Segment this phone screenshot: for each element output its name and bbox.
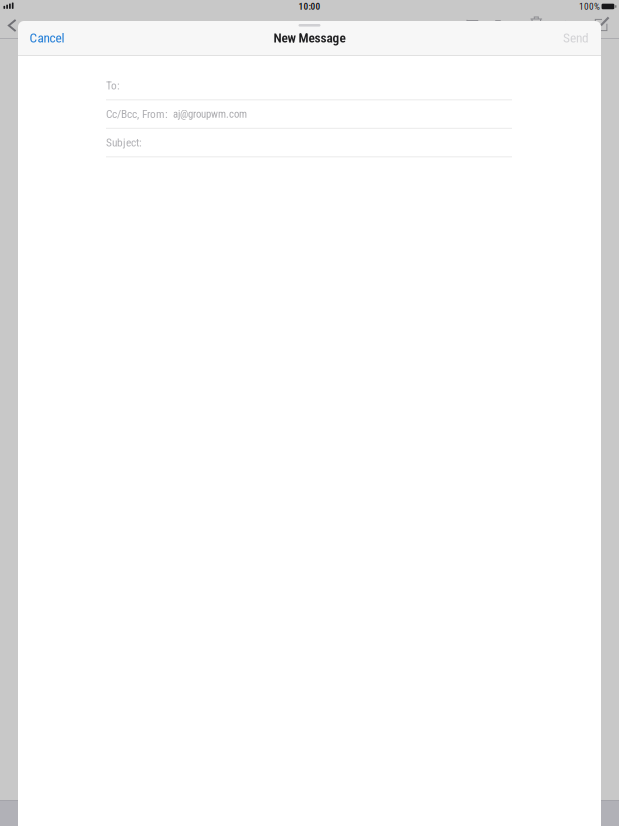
staticText: Cc/Bcc, From: — [106, 107, 168, 121]
staticText: Subject: — [106, 136, 142, 149]
staticText: 10:00 — [298, 1, 320, 12]
staticText: To: — [106, 79, 120, 92]
button[interactable]: Cc/Bcc, From: — [106, 100, 512, 129]
staticText: Cancel — [29, 30, 64, 46]
staticText: New Message — [273, 30, 345, 46]
button[interactable]: Delete — [526, 13, 546, 33]
button[interactable]: Flag — [463, 16, 482, 36]
button[interactable]: Send — [553, 21, 599, 55]
staticText: 100% — [579, 1, 600, 12]
button[interactable]: Back — [4, 15, 21, 36]
button[interactable]: Subject: — [106, 129, 512, 157]
button[interactable]: To: — [106, 72, 512, 100]
button[interactable]: Move to folder — [492, 14, 512, 34]
button[interactable]: Reply — [558, 16, 577, 36]
button[interactable]: Cancel — [21, 21, 73, 55]
staticText: aj@groupwm.com — [173, 108, 247, 120]
button[interactable]: New message — [592, 16, 613, 35]
staticText: Send — [563, 30, 589, 46]
